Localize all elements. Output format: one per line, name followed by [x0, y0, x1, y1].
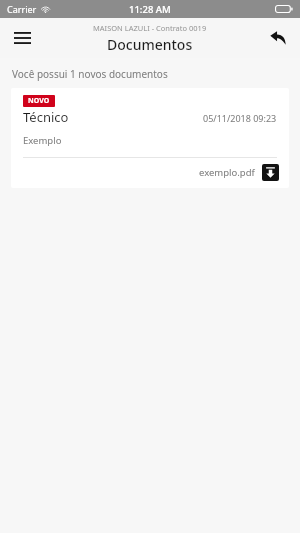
- staticText: MAISON LAZULI - Contrato 0019: [93, 23, 207, 33]
- staticText: 05/11/2018 09:23: [203, 112, 277, 124]
- staticText: NOVO: [28, 96, 50, 106]
- staticText: Documentos: [107, 35, 193, 54]
- staticText: Carrier: [7, 3, 37, 15]
- staticText: 11:28 AM: [129, 3, 171, 16]
- button[interactable]: NOVO: [11, 88, 289, 188]
- staticText: Você possui 1 novos documentos: [12, 67, 168, 81]
- button[interactable]: Menu: [4, 20, 40, 56]
- staticText: Técnico: [23, 108, 69, 126]
- staticText: exemplo.pdf: [199, 166, 255, 179]
- staticText: Exemplo: [23, 134, 62, 147]
- button[interactable]: Download: [262, 164, 279, 181]
- button[interactable]: Back: [260, 20, 296, 56]
